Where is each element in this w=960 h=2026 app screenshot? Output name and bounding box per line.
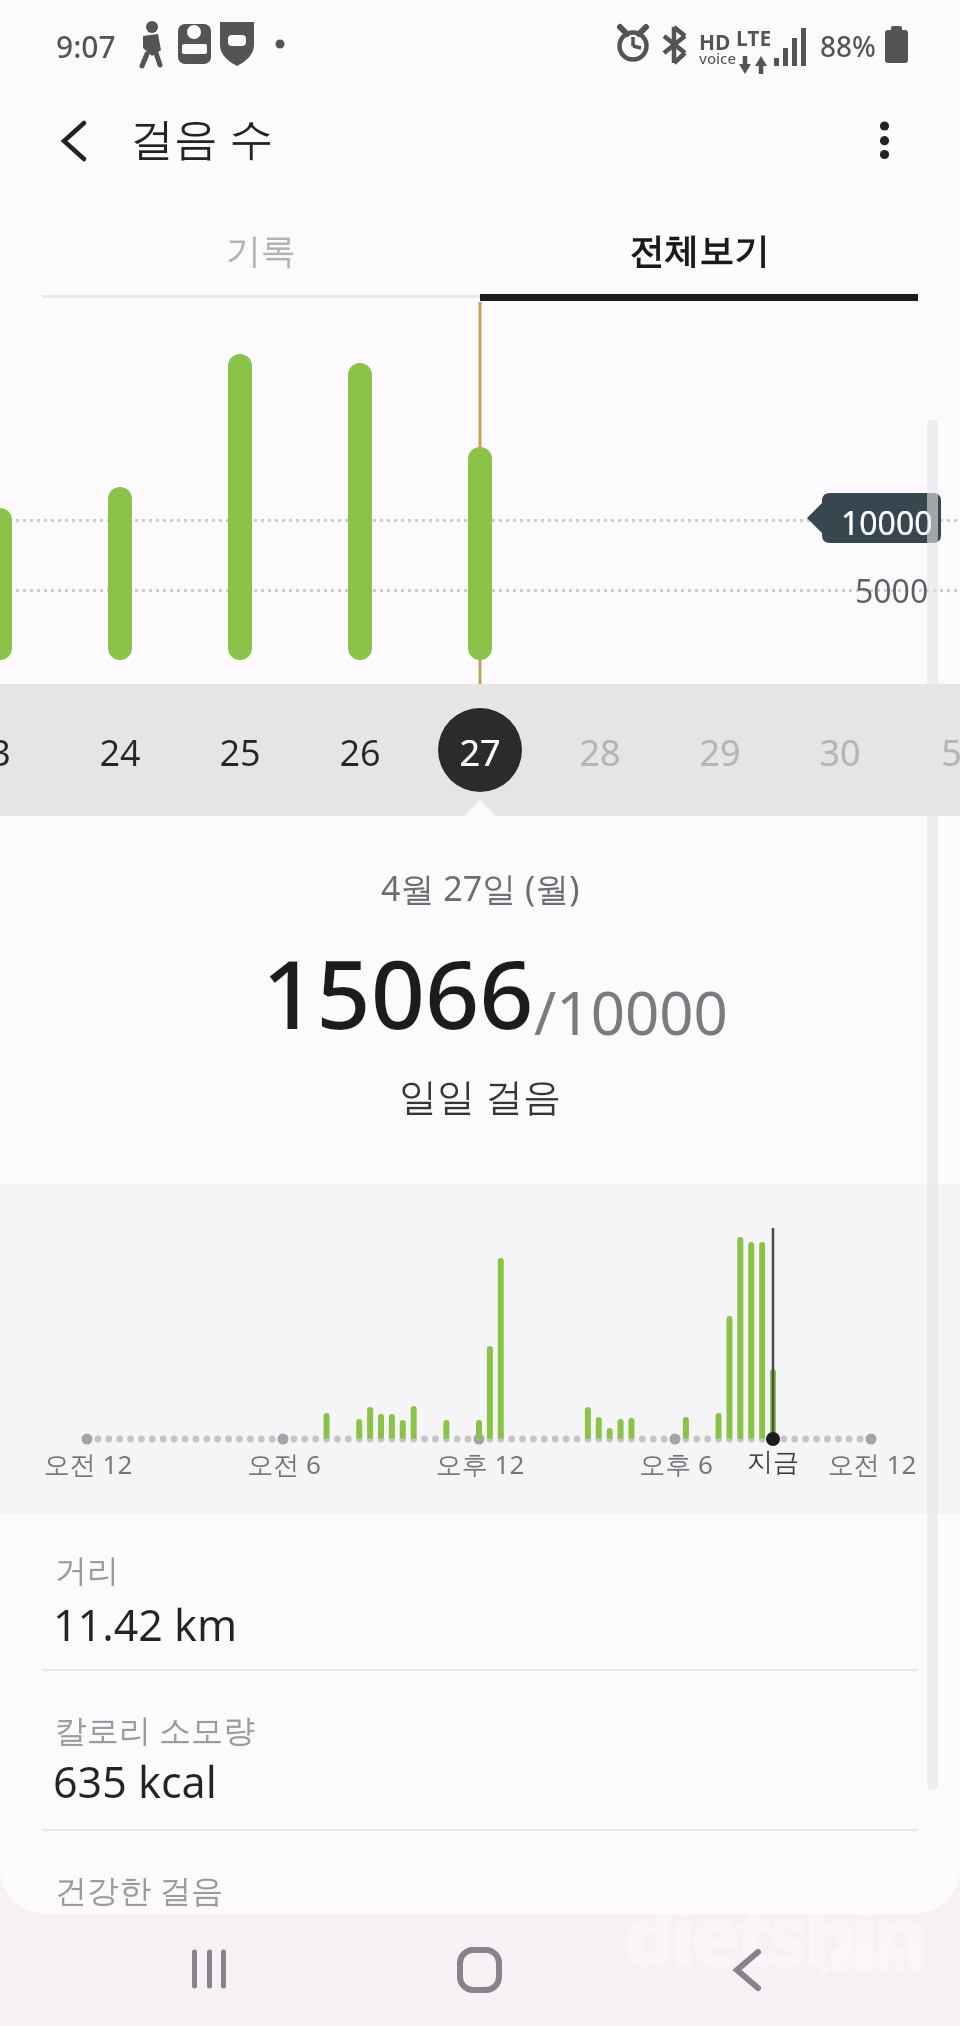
button[interactable]: Back <box>32 99 116 183</box>
staticText: 걸음 수 <box>130 107 274 167</box>
staticText: 거리 <box>55 1551 119 1591</box>
button[interactable]: 건강한 걸음 <box>0 1831 960 1951</box>
button[interactable]: Recent apps <box>149 1914 269 2026</box>
button[interactable]: 26 <box>302 684 418 816</box>
staticText: 26 <box>339 728 381 777</box>
button[interactable]: Back <box>690 1914 810 2026</box>
staticText: 15066 <box>262 927 534 1056</box>
button[interactable]: 25 <box>182 684 298 816</box>
staticText: /10000 <box>534 971 728 1053</box>
staticText: 4월 27일 (월) <box>381 865 580 911</box>
button[interactable]: 전체보기 <box>480 202 918 302</box>
button[interactable]: 칼로리 소모량 <box>0 1671 960 1829</box>
staticText: 635 kcal <box>53 1752 217 1811</box>
staticText: 27 <box>459 728 501 777</box>
staticText: 24 <box>99 728 141 777</box>
staticText: 오전 6 <box>184 1446 384 1482</box>
staticText: dietshin <box>623 1878 922 1990</box>
staticText: 5/1 <box>941 728 960 777</box>
button[interactable]: 24 <box>62 684 178 816</box>
staticText: 9:07 <box>56 26 116 67</box>
staticText: 30 <box>819 728 861 777</box>
button[interactable]: More options <box>843 99 927 183</box>
staticText: 칼로리 소모량 <box>55 1708 256 1752</box>
staticText: HD <box>699 28 731 57</box>
staticText: LTE <box>736 24 772 53</box>
staticText: 5000 <box>855 569 929 613</box>
staticText: 3 <box>0 728 11 777</box>
staticText: 오전 12 <box>772 1446 960 1482</box>
staticText: 오후 12 <box>380 1446 580 1482</box>
staticText: 오후 6 <box>576 1446 776 1482</box>
button[interactable]: 3 <box>0 684 58 816</box>
button[interactable]: Home <box>419 1914 539 2026</box>
staticText: 25 <box>219 728 261 777</box>
staticText: 11.42 km <box>53 1595 238 1654</box>
staticText: 88% <box>820 27 876 65</box>
staticText: 일일 걸음 <box>399 1069 561 1121</box>
button[interactable]: 28 <box>542 684 658 816</box>
button[interactable]: 5/1 <box>910 684 960 816</box>
button[interactable]: 27 <box>422 684 538 816</box>
staticText: voice <box>699 48 737 68</box>
button[interactable]: 30 <box>782 684 898 816</box>
staticText: 기록 <box>226 229 296 273</box>
button[interactable]: 거리 <box>0 1514 960 1669</box>
staticText: 10000 <box>841 501 933 545</box>
staticText: 29 <box>699 728 741 777</box>
staticText: 건강한 걸음 <box>55 1868 224 1912</box>
staticText: 전체보기 <box>629 229 769 273</box>
staticText: 28 <box>579 728 621 777</box>
button[interactable]: 기록 <box>42 202 480 302</box>
button[interactable]: 29 <box>662 684 778 816</box>
staticText: 지금 <box>673 1446 873 1479</box>
staticText: 오전 12 <box>0 1446 188 1482</box>
